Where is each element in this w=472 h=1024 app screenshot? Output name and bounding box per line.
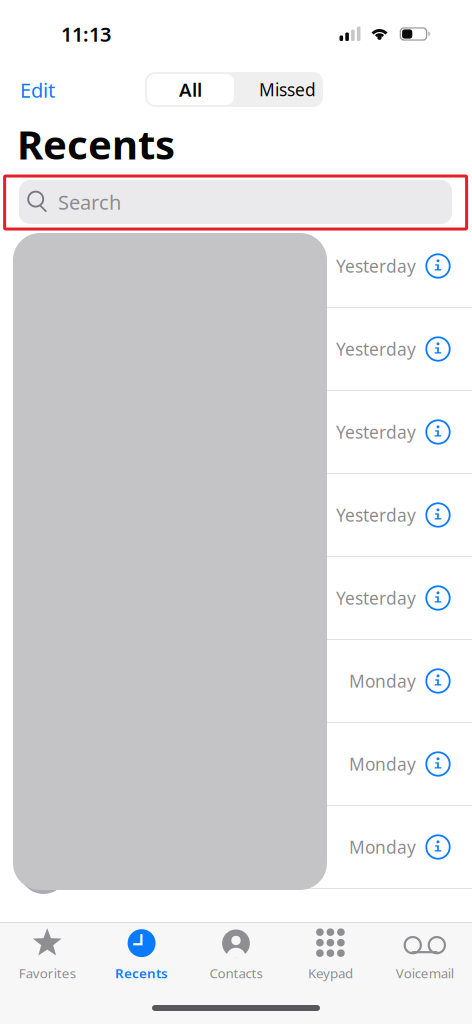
button[interactable]: Call details	[420, 742, 456, 786]
button[interactable]: Yesterday	[0, 391, 472, 474]
button[interactable]: Keypad	[283, 923, 378, 987]
button[interactable]: Contacts	[189, 923, 283, 987]
button[interactable]: Favorites	[0, 923, 94, 987]
button[interactable]: Yesterday	[0, 225, 472, 308]
button[interactable]: Recents	[94, 923, 189, 987]
button[interactable]: Call details	[420, 493, 456, 537]
button[interactable]: Edit	[0, 71, 68, 109]
staticText: Yesterday	[336, 503, 416, 526]
button[interactable]: Monday	[0, 806, 472, 889]
staticText: Recents	[115, 964, 168, 982]
button[interactable]: Call details	[420, 410, 456, 454]
button[interactable]: Monday	[0, 640, 472, 723]
staticText: Voicemail	[396, 964, 454, 982]
staticText: Search	[58, 189, 121, 215]
staticText: Monday	[349, 752, 416, 775]
button[interactable]: Call details	[420, 576, 456, 620]
staticText: Yesterday	[336, 586, 416, 609]
button[interactable]: Call details	[420, 244, 456, 288]
button[interactable]: Call details	[420, 659, 456, 703]
staticText: Edit	[20, 77, 55, 103]
staticText: Keypad	[308, 964, 353, 982]
staticText: All	[179, 77, 202, 102]
button[interactable]: Yesterday	[0, 474, 472, 557]
button[interactable]: All	[147, 74, 234, 105]
staticText: Monday	[349, 835, 416, 858]
button[interactable]: Search	[19, 180, 452, 224]
staticText: Monday	[349, 669, 416, 692]
button[interactable]: Call details	[420, 327, 456, 371]
button[interactable]: Voicemail	[378, 923, 472, 987]
staticText: 11:13	[61, 21, 111, 47]
button[interactable]: Monday	[0, 723, 472, 806]
staticText: Contacts	[209, 964, 262, 982]
button[interactable]: Call details	[420, 825, 456, 869]
staticText: Missed	[259, 78, 316, 101]
staticText: Yesterday	[336, 420, 416, 443]
staticText: Recents	[17, 117, 175, 170]
staticText: Yesterday	[336, 337, 416, 360]
button[interactable]: Yesterday	[0, 308, 472, 391]
button[interactable]: Yesterday	[0, 557, 472, 640]
staticText: Favorites	[19, 964, 76, 982]
staticText: Yesterday	[336, 254, 416, 277]
button[interactable]: Missed	[234, 74, 331, 105]
